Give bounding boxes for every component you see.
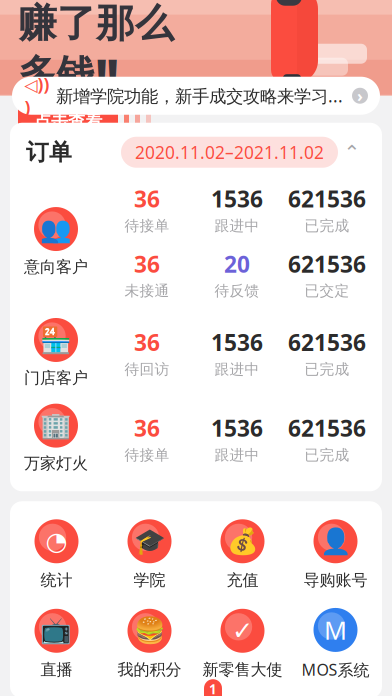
staticText: 📺 xyxy=(40,616,72,645)
staticText: 621536 xyxy=(288,249,366,279)
button[interactable]: 📺 xyxy=(10,609,103,679)
staticText: 学院 xyxy=(133,570,165,590)
staticText: 新增学院功能，新手成交攻略来学习... xyxy=(56,84,343,107)
staticText: 意向客户 xyxy=(24,257,88,277)
staticText: ◁))) xyxy=(24,73,49,119)
button[interactable]: ◔ xyxy=(10,519,103,590)
staticText: 20 xyxy=(224,249,250,279)
staticText: 🍔 xyxy=(133,616,165,645)
staticText: 621536 xyxy=(288,413,366,443)
staticText: 36 xyxy=(134,184,160,214)
staticText: 👤 xyxy=(319,527,351,556)
staticText: M xyxy=(324,613,347,647)
button[interactable]: 点击查看 xyxy=(18,106,118,138)
staticText: 统计 xyxy=(40,570,72,590)
staticText: 🏢 xyxy=(40,411,72,440)
staticText: 导购账号 xyxy=(303,570,367,590)
staticText: 新零售大使 xyxy=(202,660,282,679)
staticText: 待接单 xyxy=(124,217,169,235)
staticText: 🏪 xyxy=(40,325,72,354)
button[interactable]: 🎓 xyxy=(103,519,196,590)
staticText: 我的积分 xyxy=(117,660,181,679)
staticText: 跟进中 xyxy=(214,360,259,378)
staticText: 36 xyxy=(134,327,160,357)
staticText: ✓ xyxy=(232,616,253,645)
staticText: 直播 xyxy=(40,660,72,679)
button[interactable]: 👤 xyxy=(289,519,382,590)
staticText: MOS系统 xyxy=(301,659,369,680)
staticText: 未接通 xyxy=(124,282,169,300)
staticText: 621536 xyxy=(288,327,366,357)
button[interactable]: M xyxy=(289,608,382,680)
staticText: 订单 xyxy=(26,138,72,166)
staticText: 🎓 xyxy=(133,527,165,556)
staticText: 点击查看 xyxy=(34,111,102,133)
staticText: 跟进中 xyxy=(214,446,259,464)
staticText: ◔ xyxy=(45,527,67,556)
staticText: 1536 xyxy=(211,413,263,443)
button[interactable]: 💰 xyxy=(196,519,289,590)
button[interactable]: Collapse xyxy=(338,140,366,164)
staticText: 已交定 xyxy=(304,282,349,300)
staticText: 36 xyxy=(134,413,160,443)
staticText: 136 xyxy=(209,680,217,696)
staticText: 待反馈 xyxy=(214,282,259,300)
staticText: 待回访 xyxy=(124,360,169,378)
staticText: 2020.11.02–2021.11.02 xyxy=(135,141,324,164)
staticText: 36 xyxy=(134,249,160,279)
button[interactable]: ✓ xyxy=(196,609,289,679)
staticText: ⌃ xyxy=(343,141,360,164)
staticText: 赚了那么多钱!! xyxy=(18,0,174,98)
button[interactable]: 2020.11.02–2021.11.02 xyxy=(121,137,338,168)
staticText: 待接单 xyxy=(124,446,169,464)
staticText: 💰 xyxy=(226,527,258,556)
button[interactable]: 🍔 xyxy=(103,609,196,679)
staticText: 621536 xyxy=(288,184,366,214)
staticText: 已完成 xyxy=(304,446,349,464)
staticText: › xyxy=(357,85,363,106)
staticText: 万家灯火 xyxy=(24,454,88,473)
staticText: 1536 xyxy=(211,327,263,357)
button[interactable]: ◁))) xyxy=(12,77,380,115)
staticText: 跟进中 xyxy=(214,217,259,235)
staticText: 👥 xyxy=(40,215,72,243)
staticText: 已完成 xyxy=(304,217,349,235)
staticText: 门店客户 xyxy=(24,368,88,388)
staticText: 充值 xyxy=(226,570,258,590)
staticText: 已完成 xyxy=(304,360,349,378)
staticText: 1536 xyxy=(211,184,263,214)
